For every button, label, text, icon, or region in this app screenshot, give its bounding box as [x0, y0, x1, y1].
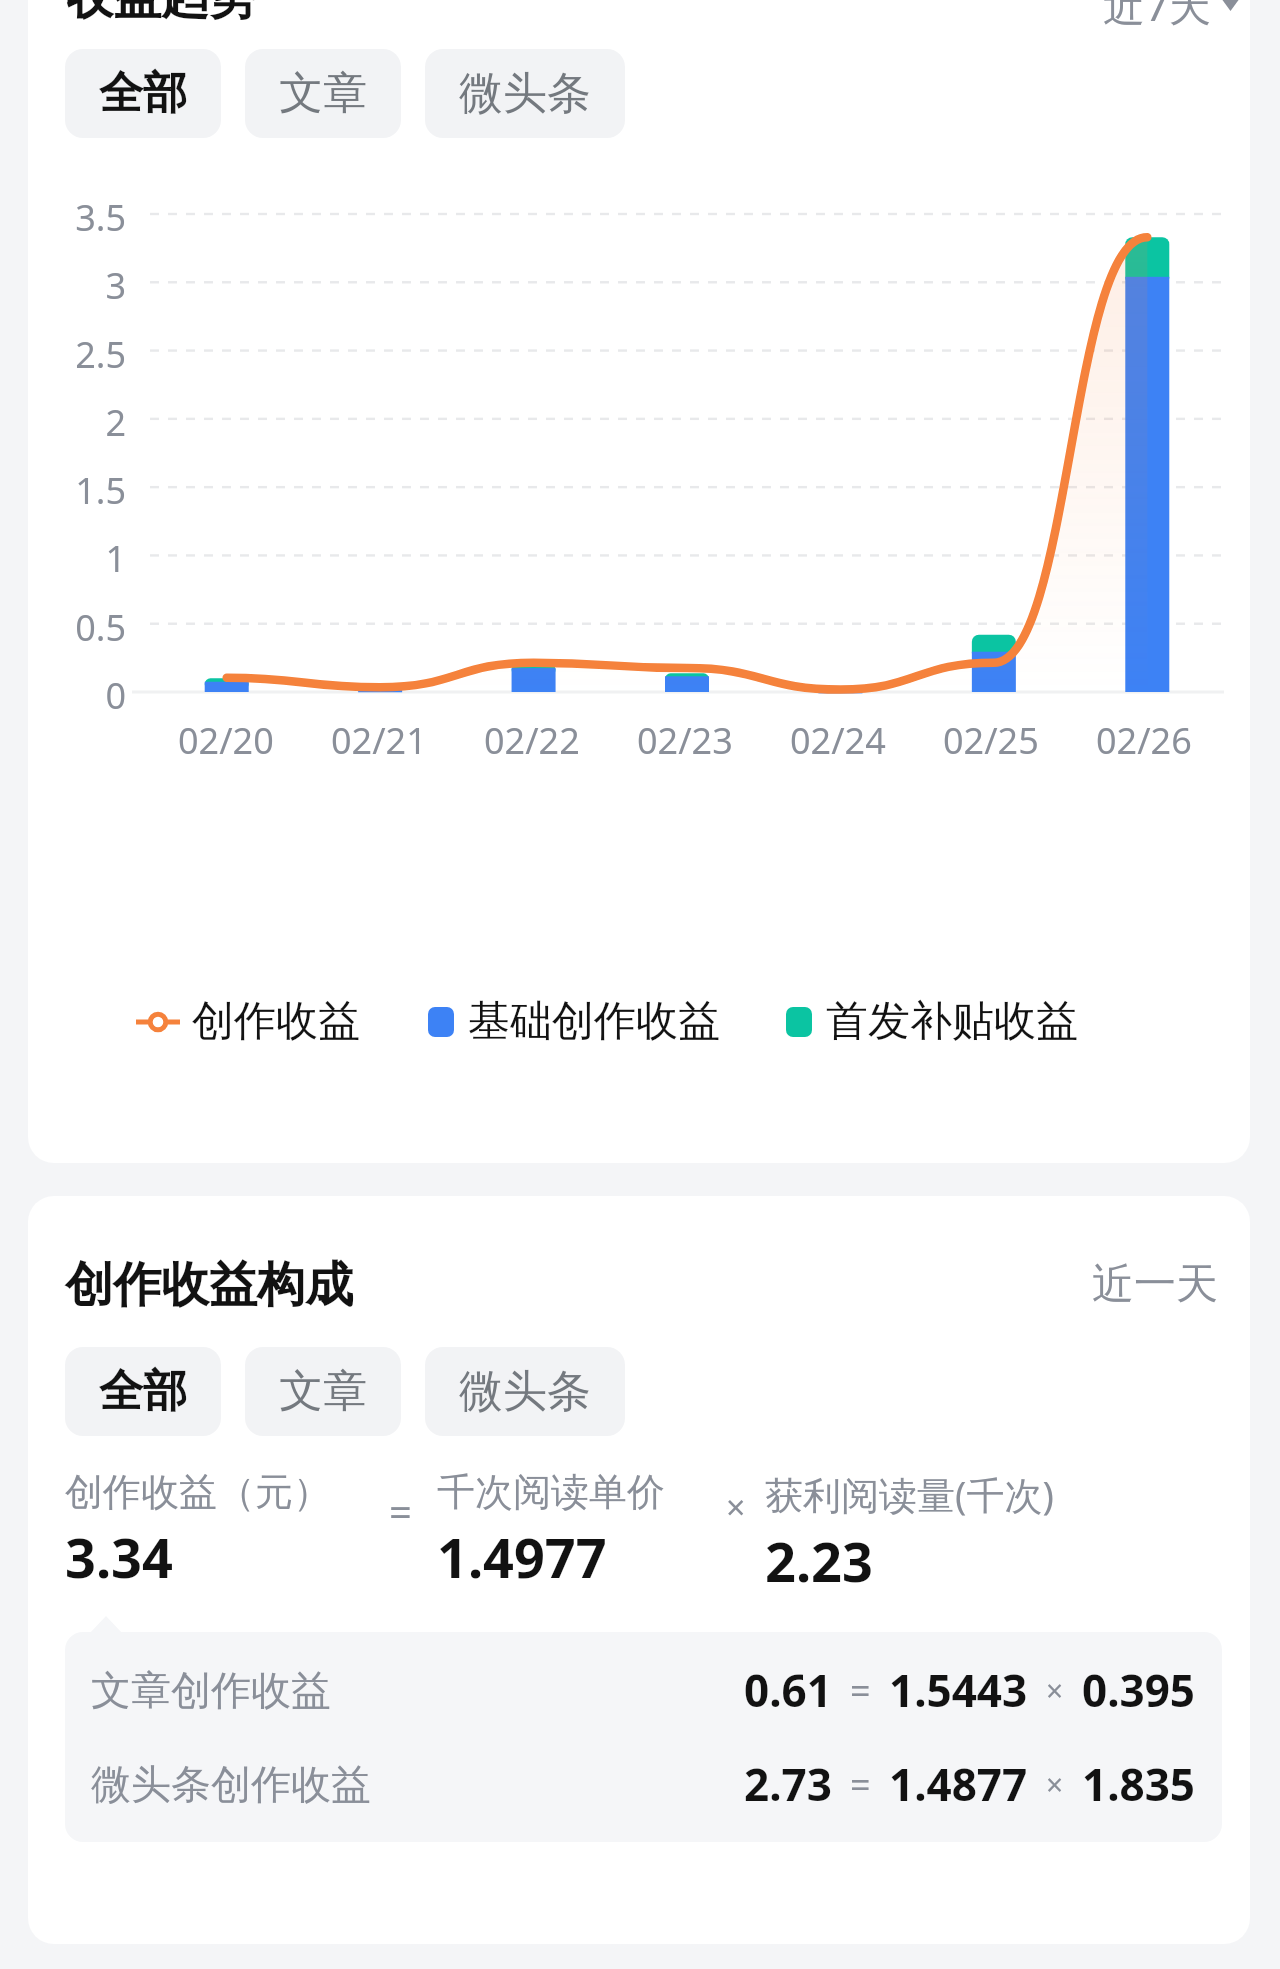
staticText: 全部 [99, 1364, 187, 1419]
button[interactable]: 微头条创作收益 [91, 1754, 1196, 1814]
staticText: 2 [28, 398, 126, 447]
staticText: = [389, 1484, 412, 1538]
button[interactable]: 微头条 [425, 49, 625, 138]
staticText: 1 [28, 534, 126, 583]
staticText: 1.4977 [437, 1520, 607, 1594]
staticText: 3 [28, 261, 126, 310]
staticText: 02/24 [790, 716, 886, 765]
staticText: 1.5 [28, 466, 126, 515]
button[interactable]: 文章 [245, 49, 401, 138]
staticText: 全部 [99, 66, 187, 121]
staticText: 基础创作收益 [468, 995, 720, 1048]
button[interactable]: 全部 [65, 1347, 221, 1436]
staticText: 创作收益构成 [65, 1255, 353, 1315]
staticText: 收益趋势 [65, 0, 257, 27]
staticText: 文章 [279, 66, 367, 121]
staticText: 创作收益 [192, 995, 360, 1048]
staticText: 近7天 [1103, 0, 1212, 33]
staticText: 1.5443 [889, 1660, 1028, 1720]
staticText: 千次阅读单价 [437, 1468, 665, 1516]
staticText: = [850, 1760, 871, 1809]
staticText: 微头条 [459, 66, 591, 121]
staticText: 02/23 [637, 716, 733, 765]
staticText: × [1046, 1764, 1064, 1805]
button[interactable]: 文章创作收益 [91, 1660, 1196, 1720]
staticText: 02/26 [1096, 716, 1192, 765]
staticText: 0 [28, 671, 126, 720]
staticText: 02/25 [943, 716, 1039, 765]
button[interactable]: 近7天 [1097, 0, 1246, 39]
staticText: 创作收益（元） [65, 1468, 331, 1516]
button[interactable]: 创作收益 [136, 995, 360, 1048]
staticText: × [726, 1484, 746, 1530]
staticText: 0.5 [28, 603, 126, 652]
staticText: 微头条创作收益 [91, 1759, 371, 1809]
staticText: 3.5 [28, 193, 126, 242]
staticText: 获利阅读量(千次) [765, 1468, 1054, 1520]
staticText: × [1046, 1670, 1064, 1711]
button[interactable]: 文章 [245, 1347, 401, 1436]
button[interactable]: 全部 [65, 49, 221, 138]
staticText: 0.61 [744, 1660, 832, 1720]
button[interactable]: 首发补贴收益 [786, 995, 1078, 1048]
staticText: 文章 [279, 1364, 367, 1419]
staticText: 02/21 [331, 716, 427, 765]
staticText: 2.23 [765, 1524, 873, 1598]
staticText: = [850, 1666, 871, 1715]
staticText: 02/20 [178, 716, 274, 765]
staticText: 2.5 [28, 330, 126, 379]
button[interactable]: 微头条 [425, 1347, 625, 1436]
button[interactable]: 基础创作收益 [428, 995, 720, 1048]
staticText: 2.73 [744, 1754, 832, 1814]
staticText: 文章创作收益 [91, 1665, 331, 1715]
staticText: 0.395 [1082, 1660, 1196, 1720]
staticText: 首发补贴收益 [826, 995, 1078, 1048]
staticText: 微头条 [459, 1364, 591, 1419]
staticText: 1.4877 [889, 1754, 1028, 1814]
staticText: 3.34 [65, 1520, 173, 1594]
staticText: 02/22 [484, 716, 580, 765]
staticText: 近一天 [1092, 1258, 1218, 1311]
staticText: 1.835 [1082, 1754, 1196, 1814]
button[interactable]: 近一天 [1088, 1254, 1222, 1315]
